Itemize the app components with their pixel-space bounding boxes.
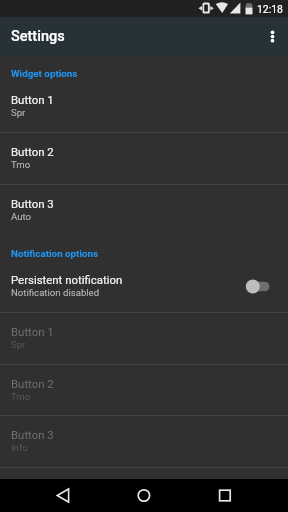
staticText: Button 3 bbox=[11, 428, 54, 441]
staticText: Notification options bbox=[11, 248, 99, 259]
staticText: Button 2 bbox=[11, 145, 54, 158]
staticText: Button 1 bbox=[11, 325, 54, 338]
button[interactable]: Button 1 bbox=[0, 81, 288, 132]
button[interactable]: Home bbox=[120, 479, 168, 512]
button[interactable]: Button 1 bbox=[0, 313, 288, 364]
button[interactable]: More options bbox=[254, 17, 288, 56]
staticText: Auto bbox=[11, 211, 32, 222]
staticText: Tmo bbox=[11, 391, 31, 402]
button[interactable]: Back bbox=[39, 479, 87, 512]
button[interactable]: Button 2 bbox=[0, 365, 288, 415]
staticText: Spr bbox=[11, 339, 26, 350]
staticText: Persistent notification bbox=[11, 273, 123, 286]
staticText: Button 2 bbox=[11, 377, 54, 390]
button[interactable]: Button 2 bbox=[0, 133, 288, 184]
button[interactable]: Button 3 bbox=[0, 416, 288, 467]
staticText: Button 1 bbox=[11, 93, 54, 106]
button[interactable]: Persistent notification bbox=[0, 261, 288, 312]
staticText: 12:18 bbox=[257, 3, 283, 15]
button[interactable]: Button 3 bbox=[0, 185, 288, 236]
staticText: Button 3 bbox=[11, 197, 54, 210]
staticText: Settings bbox=[11, 28, 65, 45]
staticText: Tmo bbox=[11, 159, 31, 170]
staticText: Spr bbox=[11, 107, 26, 118]
button[interactable]: Recent apps bbox=[201, 479, 249, 512]
staticText: Notification disabled bbox=[11, 287, 100, 298]
staticText: Info bbox=[11, 442, 28, 453]
staticText: Widget options bbox=[11, 68, 78, 79]
